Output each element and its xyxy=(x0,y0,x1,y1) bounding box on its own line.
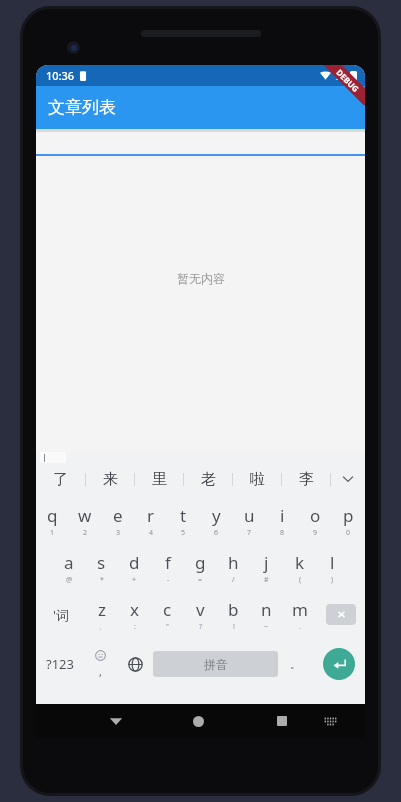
staticText: 、 xyxy=(99,622,106,631)
staticText: y xyxy=(212,504,221,527)
button[interactable]: j xyxy=(250,544,283,591)
staticText: : xyxy=(134,622,136,632)
button[interactable]: x xyxy=(118,591,151,638)
staticText: 0 xyxy=(346,528,351,538)
button[interactable]: Expand candidates xyxy=(331,463,365,495)
staticText: w xyxy=(78,504,92,527)
staticText: '词 xyxy=(53,606,69,624)
staticText: 7 xyxy=(247,528,252,538)
staticText: # xyxy=(264,575,269,585)
staticText: 老 xyxy=(201,470,216,489)
button[interactable]: b xyxy=(217,591,250,638)
button[interactable]: Home xyxy=(174,704,223,738)
staticText: h xyxy=(228,551,239,574)
button[interactable]: w xyxy=(68,497,101,544)
staticText: s xyxy=(97,551,106,574)
staticText: 9 xyxy=(313,528,318,538)
staticText: 了 xyxy=(53,470,68,489)
staticText: ! xyxy=(233,622,235,632)
button[interactable]: m xyxy=(283,591,316,638)
staticText: / xyxy=(232,575,235,585)
staticText: ? xyxy=(199,622,203,632)
button[interactable]: h xyxy=(217,544,250,591)
staticText: f xyxy=(165,551,171,574)
button[interactable]: p xyxy=(332,497,365,544)
staticText: 10:36 xyxy=(46,68,75,83)
staticText: n xyxy=(261,598,272,621)
staticText: 4 xyxy=(149,528,154,538)
button[interactable]: Enter xyxy=(313,638,365,690)
staticText: 8 xyxy=(280,528,285,538)
button[interactable]: l xyxy=(316,544,349,591)
staticText: x xyxy=(130,598,139,621)
button[interactable]: 。 xyxy=(278,638,313,690)
button[interactable]: t xyxy=(167,497,200,544)
staticText: i xyxy=(280,504,285,527)
staticText: 啦 xyxy=(250,470,265,489)
staticText: , xyxy=(99,664,102,679)
staticText: 来 xyxy=(103,470,118,489)
button[interactable]: '词 xyxy=(36,591,85,638)
staticText: DEBUG xyxy=(334,67,362,94)
button[interactable]: Emoji xyxy=(83,638,118,690)
button[interactable]: Switch language xyxy=(118,638,153,690)
staticText: e xyxy=(113,504,123,527)
button[interactable]: Back xyxy=(91,704,140,738)
button[interactable]: Recents xyxy=(257,704,306,738)
staticText: . xyxy=(299,622,301,632)
button[interactable]: v xyxy=(184,591,217,638)
staticText: ) xyxy=(331,575,334,585)
button[interactable]: s xyxy=(85,544,118,591)
staticText: ~ xyxy=(264,622,269,632)
button[interactable]: 啦 xyxy=(233,463,281,495)
staticText: @ xyxy=(66,575,73,585)
staticText: 里 xyxy=(152,470,167,489)
button[interactable]: g xyxy=(184,544,217,591)
staticText: t xyxy=(180,504,187,527)
button[interactable]: k xyxy=(283,544,316,591)
button[interactable]: a xyxy=(52,544,85,591)
button[interactable]: Backspace xyxy=(316,591,365,638)
staticText: c xyxy=(163,598,172,621)
button[interactable]: 来 xyxy=(86,463,134,495)
button[interactable]: r xyxy=(134,497,167,544)
button[interactable]: z xyxy=(85,591,118,638)
button[interactable]: d xyxy=(118,544,151,591)
staticText: 文章列表 xyxy=(48,97,116,118)
button[interactable]: u xyxy=(233,497,266,544)
button[interactable]: 了 xyxy=(36,463,85,495)
staticText: 。 xyxy=(290,657,301,671)
staticText: 6 xyxy=(214,528,219,538)
button[interactable]: e xyxy=(101,497,134,544)
button[interactable]: o xyxy=(299,497,332,544)
staticText: 李 xyxy=(299,470,314,489)
button[interactable]: 李 xyxy=(282,463,330,495)
staticText: u xyxy=(244,504,255,527)
staticText: q xyxy=(47,504,58,527)
button[interactable]: n xyxy=(250,591,283,638)
button[interactable]: i xyxy=(266,497,299,544)
staticText: 2 xyxy=(83,528,88,538)
staticText: r xyxy=(147,504,155,527)
button[interactable]: 拼音 xyxy=(153,651,278,677)
staticText: + xyxy=(132,575,137,585)
button[interactable]: c xyxy=(151,591,184,638)
staticText: a xyxy=(64,551,74,574)
staticText: j xyxy=(264,551,269,574)
staticText: m xyxy=(292,598,308,621)
button[interactable]: y xyxy=(200,497,233,544)
button[interactable]: Keyboard xyxy=(306,704,355,738)
button[interactable]: ?123 xyxy=(36,638,83,690)
staticText: 拼音 xyxy=(204,657,228,672)
staticText: v xyxy=(196,598,205,621)
button[interactable]: 老 xyxy=(184,463,232,495)
staticText: - xyxy=(167,575,170,585)
staticText: ?123 xyxy=(46,655,74,673)
button[interactable]: f xyxy=(151,544,184,591)
staticText: p xyxy=(343,504,354,527)
button[interactable]: 里 xyxy=(135,463,183,495)
staticText: o xyxy=(310,504,321,527)
staticText: " xyxy=(166,622,169,632)
button[interactable]: q xyxy=(36,497,68,544)
staticText: 1 xyxy=(50,528,55,538)
